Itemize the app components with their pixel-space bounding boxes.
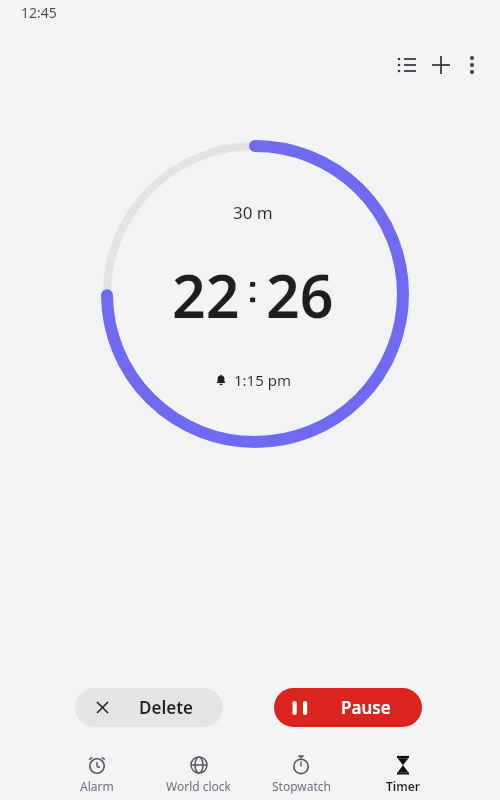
button[interactable] (458, 48, 486, 82)
staticText: 26 (266, 255, 334, 335)
staticText: 1:15 pm (234, 370, 291, 390)
staticText: Stopwatch (272, 778, 331, 794)
button[interactable]: Timer (352, 748, 454, 800)
button[interactable]: World clock (148, 748, 250, 800)
button[interactable]: Delete (75, 688, 223, 727)
staticText: 12:45 (21, 3, 57, 22)
staticText: World clock (166, 778, 232, 794)
staticText: Pause (341, 696, 391, 719)
staticText: Delete (139, 696, 193, 719)
staticText: 22 (172, 255, 240, 335)
staticText: 30 m (233, 201, 273, 224)
staticText: Timer (386, 778, 420, 794)
button[interactable] (424, 48, 458, 82)
staticText: Alarm (80, 778, 114, 794)
button[interactable]: Stopwatch (250, 748, 352, 800)
button[interactable]: Pause (274, 688, 422, 727)
button[interactable] (390, 48, 424, 82)
button[interactable]: Alarm (46, 748, 148, 800)
